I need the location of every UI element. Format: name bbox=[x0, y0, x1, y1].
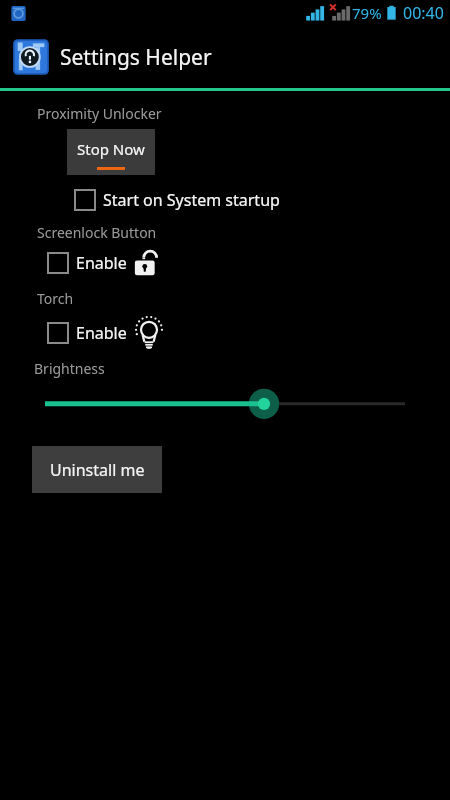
button[interactable]: Enable bbox=[48, 313, 169, 353]
staticText: Stop Now bbox=[77, 139, 145, 159]
staticText: Settings Helper bbox=[60, 43, 212, 72]
other: Torch bbox=[129, 313, 169, 353]
button[interactable]: Start on System startup bbox=[75, 189, 280, 211]
staticText: Proximity Unlocker bbox=[37, 104, 162, 123]
button[interactable]: Enable bbox=[48, 247, 163, 279]
staticText: Enable bbox=[76, 252, 127, 274]
staticText: Screenlock Button bbox=[37, 223, 157, 242]
button[interactable]: Brightness bbox=[0, 384, 450, 420]
staticText: 00:40 bbox=[403, 2, 444, 24]
staticText: Brightness bbox=[34, 359, 105, 378]
staticText: Start on System startup bbox=[103, 189, 280, 211]
staticText: Torch bbox=[37, 289, 74, 308]
other: Screen lock bbox=[131, 247, 163, 279]
button[interactable]: Stop Now bbox=[67, 129, 155, 175]
staticText: 79% bbox=[352, 3, 382, 23]
button[interactable]: Uninstall me bbox=[32, 446, 162, 493]
staticText: Uninstall me bbox=[50, 459, 145, 481]
staticText: Enable bbox=[76, 322, 127, 344]
